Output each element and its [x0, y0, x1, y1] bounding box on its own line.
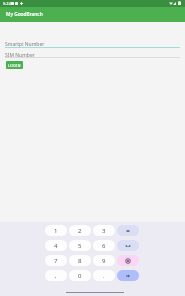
staticText: 3: [102, 227, 106, 235]
staticText: Smartpi Number: [5, 41, 45, 48]
staticText: 0: [78, 272, 82, 280]
button[interactable]: Sticker: [117, 255, 139, 266]
button[interactable]: ,: [45, 270, 67, 281]
button[interactable]: Enter: [117, 270, 139, 281]
staticText: 9: [102, 257, 106, 265]
staticText: 1: [54, 227, 58, 235]
staticText: 8: [78, 257, 82, 265]
staticText: 6: [102, 242, 106, 250]
button[interactable]: 9: [93, 255, 115, 266]
button[interactable]: Backspace: [117, 225, 139, 236]
staticText: ,: [55, 272, 57, 280]
staticText: 5: [78, 242, 82, 250]
staticText: LOGIN: [8, 63, 21, 68]
button[interactable]: LOGIN: [6, 61, 23, 69]
staticText: SIM Number: [5, 52, 35, 59]
button[interactable]: 7: [45, 255, 67, 266]
button[interactable]: 2: [69, 225, 91, 236]
button[interactable]: 8: [69, 255, 91, 266]
button[interactable]: .: [93, 270, 115, 281]
staticText: 2: [78, 227, 82, 235]
staticText: 4: [54, 242, 58, 250]
button[interactable]: 1: [45, 225, 67, 236]
staticText: .: [103, 272, 105, 280]
staticText: 5:24: [3, 1, 11, 6]
button[interactable]: 6: [93, 240, 115, 251]
button[interactable]: Space: [117, 240, 139, 251]
button[interactable]: 3: [93, 225, 115, 236]
button[interactable]: 4: [45, 240, 67, 251]
staticText: 7: [54, 257, 58, 265]
staticText: My GoodBranch: [6, 11, 43, 18]
button[interactable]: 0: [69, 270, 91, 281]
button[interactable]: 5: [69, 240, 91, 251]
